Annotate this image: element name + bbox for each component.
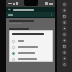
button[interactable]: Volume up [62, 8, 67, 13]
button[interactable] [12, 38, 50, 44]
button[interactable]: Screenshot [62, 32, 67, 37]
button[interactable] [9, 20, 55, 24]
button[interactable] [9, 36, 55, 40]
button[interactable]: Home [62, 50, 67, 55]
button[interactable]: Volume down [62, 14, 67, 19]
button[interactable]: More [62, 62, 67, 67]
button[interactable]: More options [6, 12, 55, 17]
button[interactable] [12, 56, 50, 62]
button[interactable]: Overview [62, 56, 67, 61]
button[interactable]: Back [62, 44, 67, 49]
button[interactable]: Rotate right [62, 26, 67, 31]
button[interactable] [12, 50, 50, 56]
button[interactable] [9, 44, 55, 48]
button[interactable]: Rotate left [62, 20, 67, 25]
button[interactable]: Back [6, 7, 55, 12]
button[interactable]: Zoom [62, 38, 67, 43]
button[interactable] [9, 28, 55, 32]
button[interactable] [9, 52, 55, 56]
button[interactable] [12, 44, 50, 50]
button[interactable]: More options [50, 13, 53, 16]
button[interactable]: Back [8, 8, 11, 11]
button[interactable]: Power [62, 2, 67, 7]
